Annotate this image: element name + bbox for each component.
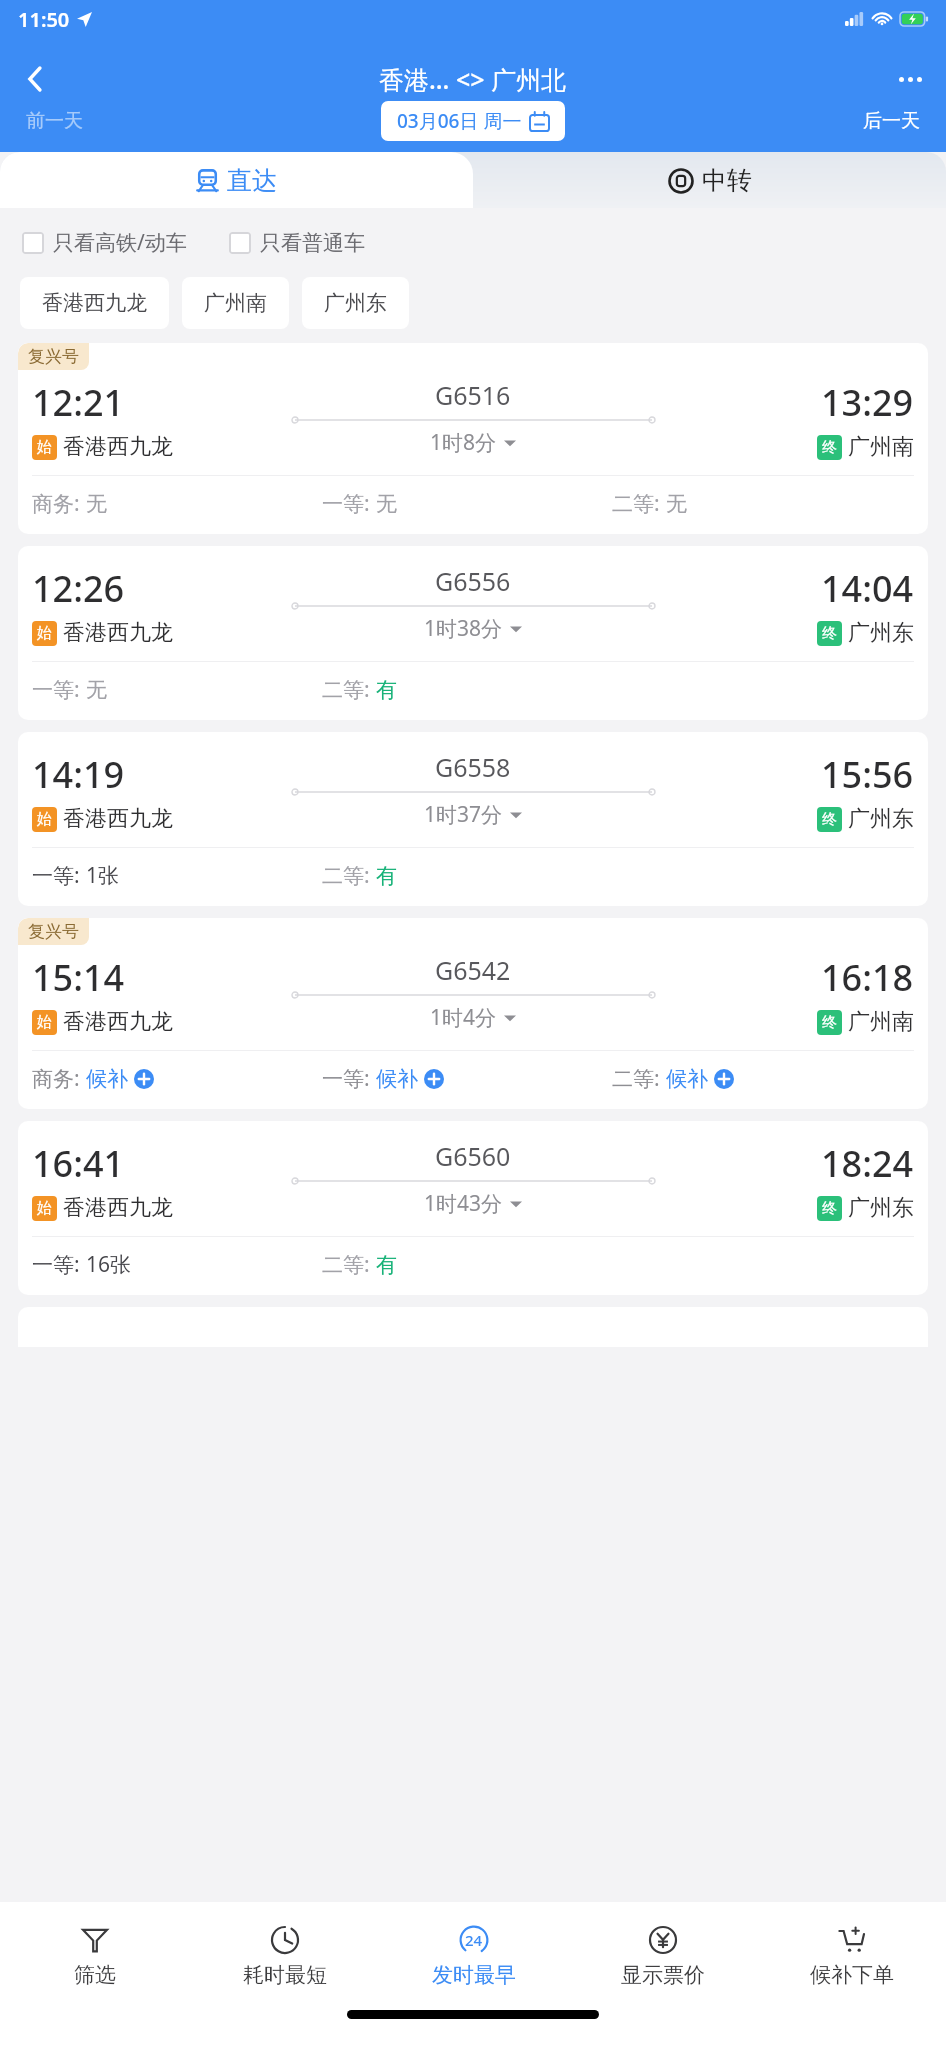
staticText: 1时4分 [430, 1003, 497, 1032]
staticText: 候补 [666, 1066, 708, 1092]
staticText: 复兴号 [28, 346, 79, 367]
staticText: 1时38分 [424, 614, 503, 643]
staticText: G6560 [435, 1139, 511, 1173]
staticText: 发时最早 [432, 1962, 516, 1988]
button[interactable]: 显示票价 [568, 1902, 757, 2010]
button[interactable]: More options [888, 57, 932, 101]
staticText: 中转 [702, 165, 752, 196]
staticText: 13:29 [821, 378, 914, 427]
staticText: 终 [822, 1013, 837, 1032]
staticText: 香港西九龙 [42, 290, 147, 316]
staticText: G6556 [435, 564, 511, 598]
staticText: 16:41 [32, 1139, 125, 1188]
button[interactable]: 12:26 [18, 546, 928, 720]
staticText: 终 [822, 810, 837, 829]
staticText: G6558 [435, 750, 511, 784]
staticText: 终 [822, 438, 837, 457]
button[interactable]: 复兴号 [18, 343, 928, 534]
staticText: 1时43分 [424, 1189, 503, 1218]
button[interactable]: 直达 [0, 152, 473, 208]
staticText: 无 [666, 491, 687, 517]
staticText: 后一天 [863, 109, 920, 133]
button[interactable]: 只看高铁/动车 [22, 224, 187, 261]
staticText: 商务: [32, 489, 86, 518]
staticText: 16:18 [821, 953, 914, 1002]
staticText: 候补 [376, 1066, 418, 1092]
staticText: G6516 [435, 378, 511, 412]
staticText: 二等: [612, 489, 666, 518]
staticText: 二等: [322, 861, 376, 890]
staticText: 一等: [322, 489, 376, 518]
button[interactable]: 耗时最短 [190, 1902, 379, 2010]
staticText: 一等: [32, 861, 86, 890]
staticText: 1张 [86, 861, 120, 890]
staticText: 14:19 [32, 750, 125, 799]
staticText: 11:50 [18, 6, 70, 33]
staticText: 有 [376, 1252, 397, 1278]
staticText: 香港西九龙 [63, 805, 173, 833]
staticText: 终 [822, 624, 837, 643]
staticText: 始 [37, 438, 52, 457]
staticText: 无 [86, 677, 107, 703]
button[interactable]: 广州东 [302, 277, 409, 329]
staticText: 广州南 [204, 290, 267, 316]
staticText: 二等: [322, 675, 376, 704]
staticText: 直达 [227, 165, 277, 196]
staticText: 24 [465, 1930, 483, 1950]
staticText: 有 [376, 863, 397, 889]
staticText: 广州南 [848, 433, 914, 461]
staticText: 香港西九龙 [63, 1008, 173, 1036]
staticText: 二等: [612, 1064, 666, 1093]
staticText: 18:24 [821, 1139, 914, 1188]
button[interactable]: 后一天 [855, 103, 928, 139]
staticText: 有 [376, 677, 397, 703]
staticText: 始 [37, 624, 52, 643]
button[interactable]: Back [14, 57, 58, 101]
staticText: 广州东 [324, 290, 387, 316]
button[interactable]: 前一天 [18, 103, 91, 139]
staticText: 香港西九龙 [63, 619, 173, 647]
staticText: 12:26 [32, 564, 125, 613]
staticText: 广州东 [848, 619, 914, 647]
staticText: 始 [37, 1199, 52, 1218]
button[interactable]: 香港西九龙 [20, 277, 169, 329]
staticText: 无 [86, 491, 107, 517]
button[interactable]: 只看普通车 [229, 226, 365, 260]
button[interactable]: 中转 [473, 152, 946, 208]
staticText: 15:14 [32, 953, 125, 1002]
staticText: 14:04 [821, 564, 914, 613]
staticText: 一等: [32, 1250, 86, 1279]
staticText: 候补 [86, 1066, 128, 1092]
staticText: 一等: [32, 675, 86, 704]
staticText: 只看高铁/动车 [53, 228, 187, 257]
staticText: 香港西九龙 [63, 1194, 173, 1222]
staticText: 筛选 [74, 1962, 116, 1988]
button[interactable]: 16:41 [18, 1121, 928, 1295]
staticText: 12:21 [32, 378, 125, 427]
button[interactable]: 复兴号 [18, 918, 928, 1109]
staticText: 始 [37, 1013, 52, 1032]
staticText: 耗时最短 [243, 1962, 327, 1988]
staticText: 03月06日 周一 [397, 108, 522, 134]
button[interactable]: 候补下单 [757, 1902, 946, 2010]
staticText: 商务: [32, 1064, 86, 1093]
button[interactable]: 广州南 [182, 277, 289, 329]
staticText: 香港西九龙 [63, 433, 173, 461]
staticText: G6542 [435, 953, 511, 987]
staticText: 只看普通车 [260, 230, 365, 256]
staticText: 无 [376, 491, 397, 517]
staticText: 1时37分 [424, 800, 503, 829]
button[interactable]: 筛选 [0, 1902, 190, 2010]
staticText: 一等: [322, 1064, 376, 1093]
staticText: 广州东 [848, 1194, 914, 1222]
staticText: 显示票价 [621, 1962, 705, 1988]
staticText: 广州南 [848, 1008, 914, 1036]
button[interactable]: 24 [379, 1902, 568, 2010]
staticText: 前一天 [26, 109, 83, 133]
staticText: 广州东 [848, 805, 914, 833]
button[interactable]: 14:19 [18, 732, 928, 906]
staticText: 二等: [322, 1250, 376, 1279]
button[interactable]: 03月06日 周一 [381, 101, 565, 141]
staticText: 1时8分 [430, 428, 497, 457]
staticText: 15:56 [821, 750, 914, 799]
